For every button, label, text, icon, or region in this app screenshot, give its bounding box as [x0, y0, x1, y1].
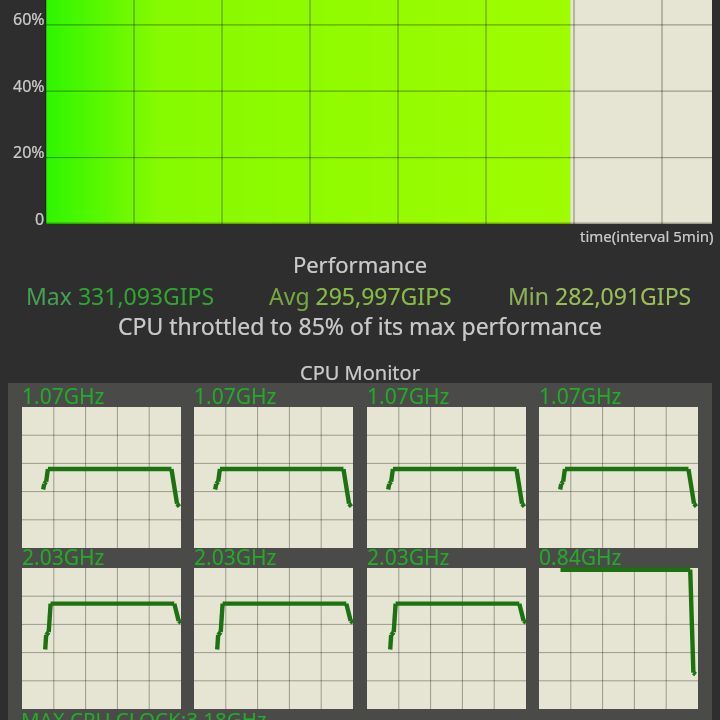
- staticText: 1.07GHz: [194, 382, 277, 411]
- staticText: 1.07GHz: [367, 382, 450, 411]
- button[interactable]: Core 8 clock 0.84GHz: [539, 568, 698, 709]
- button[interactable]: Core 6 clock 2.03GHz: [194, 568, 353, 709]
- button[interactable]: Avg 295,997GIPS: [240, 280, 480, 311]
- staticText: CPU throttled to 85% of its max performa…: [0, 310, 720, 341]
- staticText: Max 331,093GIPS: [26, 280, 215, 311]
- staticText: 60%: [13, 8, 45, 30]
- staticText: 1.07GHz: [22, 382, 105, 411]
- button[interactable]: Core 1 clock 1.07GHz: [22, 407, 181, 548]
- button[interactable]: Core 7 clock 2.03GHz: [367, 568, 526, 709]
- staticText: Avg 295,997GIPS: [269, 280, 452, 311]
- button[interactable]: Core 5 clock 2.03GHz: [22, 568, 181, 709]
- button[interactable]: Max 331,093GIPS: [0, 280, 240, 311]
- staticText: CPU Monitor: [0, 359, 720, 386]
- staticText: 1.07GHz: [539, 382, 622, 411]
- staticText: time(interval 5min): [580, 226, 714, 246]
- button[interactable]: Core 3 clock 1.07GHz: [367, 407, 526, 548]
- button[interactable]: Min 282,091GIPS: [480, 280, 720, 311]
- button[interactable]: Core 4 clock 1.07GHz: [539, 407, 698, 548]
- staticText: Performance: [0, 249, 720, 279]
- staticText: MAX CPU CLOCK:3.18GHz: [21, 705, 267, 720]
- staticText: Min 282,091GIPS: [508, 280, 692, 311]
- staticText: 20%: [13, 141, 45, 163]
- staticText: 0.84GHz: [539, 543, 622, 572]
- button[interactable]: CPU throttling graph: [0, 0, 720, 224]
- staticText: 2.03GHz: [194, 543, 277, 572]
- staticText: 40%: [13, 75, 45, 97]
- staticText: 2.03GHz: [22, 543, 105, 572]
- staticText: 2.03GHz: [367, 543, 450, 572]
- staticText: 0: [35, 208, 45, 230]
- button[interactable]: Core 2 clock 1.07GHz: [194, 407, 353, 548]
